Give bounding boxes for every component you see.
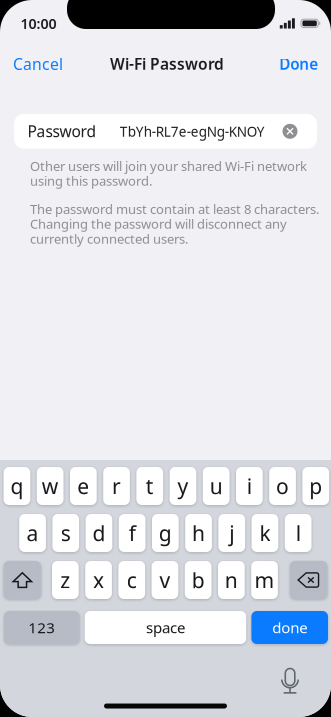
staticText: 10:00	[21, 14, 57, 33]
staticText: n	[225, 566, 238, 594]
button[interactable]: b	[185, 561, 211, 599]
button[interactable]: s	[52, 514, 79, 552]
button[interactable]: 123	[4, 611, 80, 644]
button[interactable]: f	[119, 514, 145, 552]
staticText: Wi-Fi Password	[110, 53, 224, 74]
staticText: k	[259, 519, 270, 547]
button[interactable]: Clear text	[277, 118, 303, 144]
staticText: x	[93, 566, 104, 594]
button[interactable]: x	[85, 561, 112, 599]
staticText: using this password.	[30, 172, 152, 190]
button[interactable]: t	[136, 467, 163, 505]
staticText: currently connected users.	[30, 230, 188, 247]
button[interactable]: r	[103, 467, 130, 505]
button[interactable]: space	[85, 611, 246, 644]
button[interactable]: l	[285, 514, 311, 552]
staticText: s	[61, 519, 71, 547]
staticText: c	[127, 566, 137, 594]
button[interactable]: q	[4, 467, 30, 505]
button[interactable]: z	[52, 561, 79, 599]
staticText: b	[192, 566, 205, 594]
button[interactable]: m	[251, 561, 278, 599]
button[interactable]: g	[152, 514, 179, 552]
button[interactable]: n	[218, 561, 245, 599]
staticText: r	[112, 472, 121, 500]
staticText: e	[77, 472, 89, 500]
staticText: z	[60, 566, 70, 594]
button[interactable]: done	[251, 611, 328, 644]
button[interactable]: d	[86, 514, 112, 552]
button[interactable]: y	[170, 467, 196, 505]
button[interactable]: h	[185, 514, 212, 552]
staticText: q	[10, 472, 23, 500]
staticText: done	[272, 617, 307, 638]
staticText: v	[159, 566, 170, 594]
staticText: TbYh-RL7e-egNg-KNOY	[120, 122, 265, 141]
staticText: j	[229, 519, 234, 547]
button[interactable]: Done	[271, 43, 326, 84]
button[interactable]: k	[252, 514, 278, 552]
staticText: space	[146, 617, 185, 638]
staticText: m	[255, 566, 275, 594]
button[interactable]: Cancel	[5, 43, 71, 84]
staticText: a	[26, 519, 38, 547]
staticText: Changing the password will disconnect an…	[30, 215, 287, 233]
button[interactable]: c	[118, 561, 145, 599]
staticText: w	[42, 472, 59, 500]
button[interactable]: Delete	[290, 561, 327, 599]
staticText: l	[296, 519, 301, 547]
button[interactable]: a	[19, 514, 46, 552]
staticText: Other users will join your shared Wi-Fi …	[30, 157, 307, 175]
staticText: g	[159, 519, 172, 547]
staticText: y	[177, 472, 188, 500]
button[interactable]: j	[218, 514, 245, 552]
button[interactable]: o	[269, 467, 296, 505]
staticText: p	[309, 472, 322, 500]
staticText: Cancel	[13, 53, 63, 74]
staticText: 123	[28, 617, 55, 638]
staticText: u	[210, 472, 223, 500]
button[interactable]: u	[203, 467, 229, 505]
button[interactable]: Dictation	[279, 668, 301, 694]
staticText: Done	[279, 53, 318, 74]
staticText: o	[276, 472, 289, 500]
staticText: t	[146, 472, 154, 500]
button[interactable]: e	[70, 467, 97, 505]
staticText: Password	[27, 121, 96, 142]
button[interactable]: v	[152, 561, 178, 599]
button[interactable]: i	[236, 467, 263, 505]
staticText: d	[92, 519, 105, 547]
staticText: The password must contain at least 8 cha…	[30, 200, 319, 218]
staticText: h	[192, 519, 205, 547]
staticText: i	[247, 472, 252, 500]
button[interactable]: w	[37, 467, 63, 505]
button[interactable]: p	[302, 467, 329, 505]
staticText: f	[129, 519, 136, 547]
button[interactable]: Shift	[4, 561, 41, 599]
